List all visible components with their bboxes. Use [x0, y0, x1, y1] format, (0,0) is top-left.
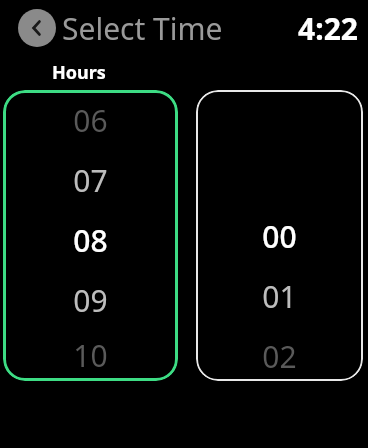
staticText: 00 [262, 216, 297, 257]
staticText: 07 [73, 160, 108, 201]
staticText: 08 [73, 220, 108, 261]
button[interactable]: Hours picker [3, 90, 178, 381]
staticText: 09 [73, 280, 108, 321]
staticText: 06 [73, 100, 108, 141]
staticText: 4:22 [298, 8, 358, 49]
staticText: 02 [262, 336, 297, 377]
staticText: Hours [52, 60, 106, 85]
button[interactable]: Minutes picker [196, 90, 363, 381]
staticText: 10 [73, 335, 108, 376]
staticText: 01 [262, 276, 297, 317]
button[interactable]: Back [18, 9, 56, 47]
staticText: Select Time [62, 8, 223, 49]
